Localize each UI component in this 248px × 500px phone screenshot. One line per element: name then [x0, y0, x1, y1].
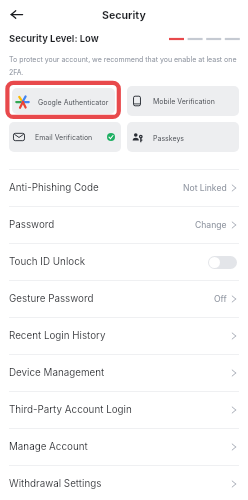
- button[interactable]: Manage Account: [0, 428, 248, 465]
- button[interactable]: Third-Party Account Login: [0, 391, 248, 428]
- button[interactable]: Passkeys: [127, 122, 239, 152]
- button[interactable]: Mobile Verification: [127, 86, 239, 116]
- button[interactable]: Device Management: [0, 354, 248, 391]
- button[interactable]: Withdrawal Settings: [0, 465, 248, 500]
- staticText: Touch ID Unlock: [9, 256, 86, 268]
- button[interactable]: Touch ID Unlock: [0, 243, 248, 280]
- button[interactable]: Gesture Password: [0, 280, 248, 317]
- staticText: Anti-Phishing Code: [9, 182, 99, 194]
- button[interactable]: Google Authenticator: [12, 88, 115, 114]
- staticText: Manage Account: [9, 441, 88, 453]
- staticText: Device Management: [9, 367, 105, 379]
- staticText: Off: [214, 294, 227, 304]
- staticText: Change: [195, 220, 227, 230]
- button[interactable]: Anti-Phishing Code: [0, 169, 248, 206]
- staticText: To protect your account, we recommend th…: [9, 55, 241, 77]
- button[interactable]: Email Verification: [9, 122, 121, 152]
- staticText: Google Authenticator: [38, 98, 109, 106]
- staticText: Passkeys: [153, 134, 185, 142]
- staticText: Not Linked: [183, 183, 227, 193]
- staticText: Recent Login History: [9, 330, 106, 342]
- staticText: Mobile Verification: [153, 97, 215, 105]
- button[interactable]: Password: [0, 206, 248, 243]
- button[interactable]: Recent Login History: [0, 317, 248, 354]
- staticText: Third-Party Account Login: [9, 404, 132, 416]
- staticText: Password: [9, 219, 55, 231]
- button[interactable]: Back: [5, 3, 27, 25]
- staticText: Withdrawal Settings: [9, 478, 102, 490]
- staticText: Security Level: Low: [9, 33, 99, 44]
- staticText: Email Verification: [35, 133, 93, 141]
- staticText: Security: [102, 9, 146, 22]
- staticText: Gesture Password: [9, 293, 94, 305]
